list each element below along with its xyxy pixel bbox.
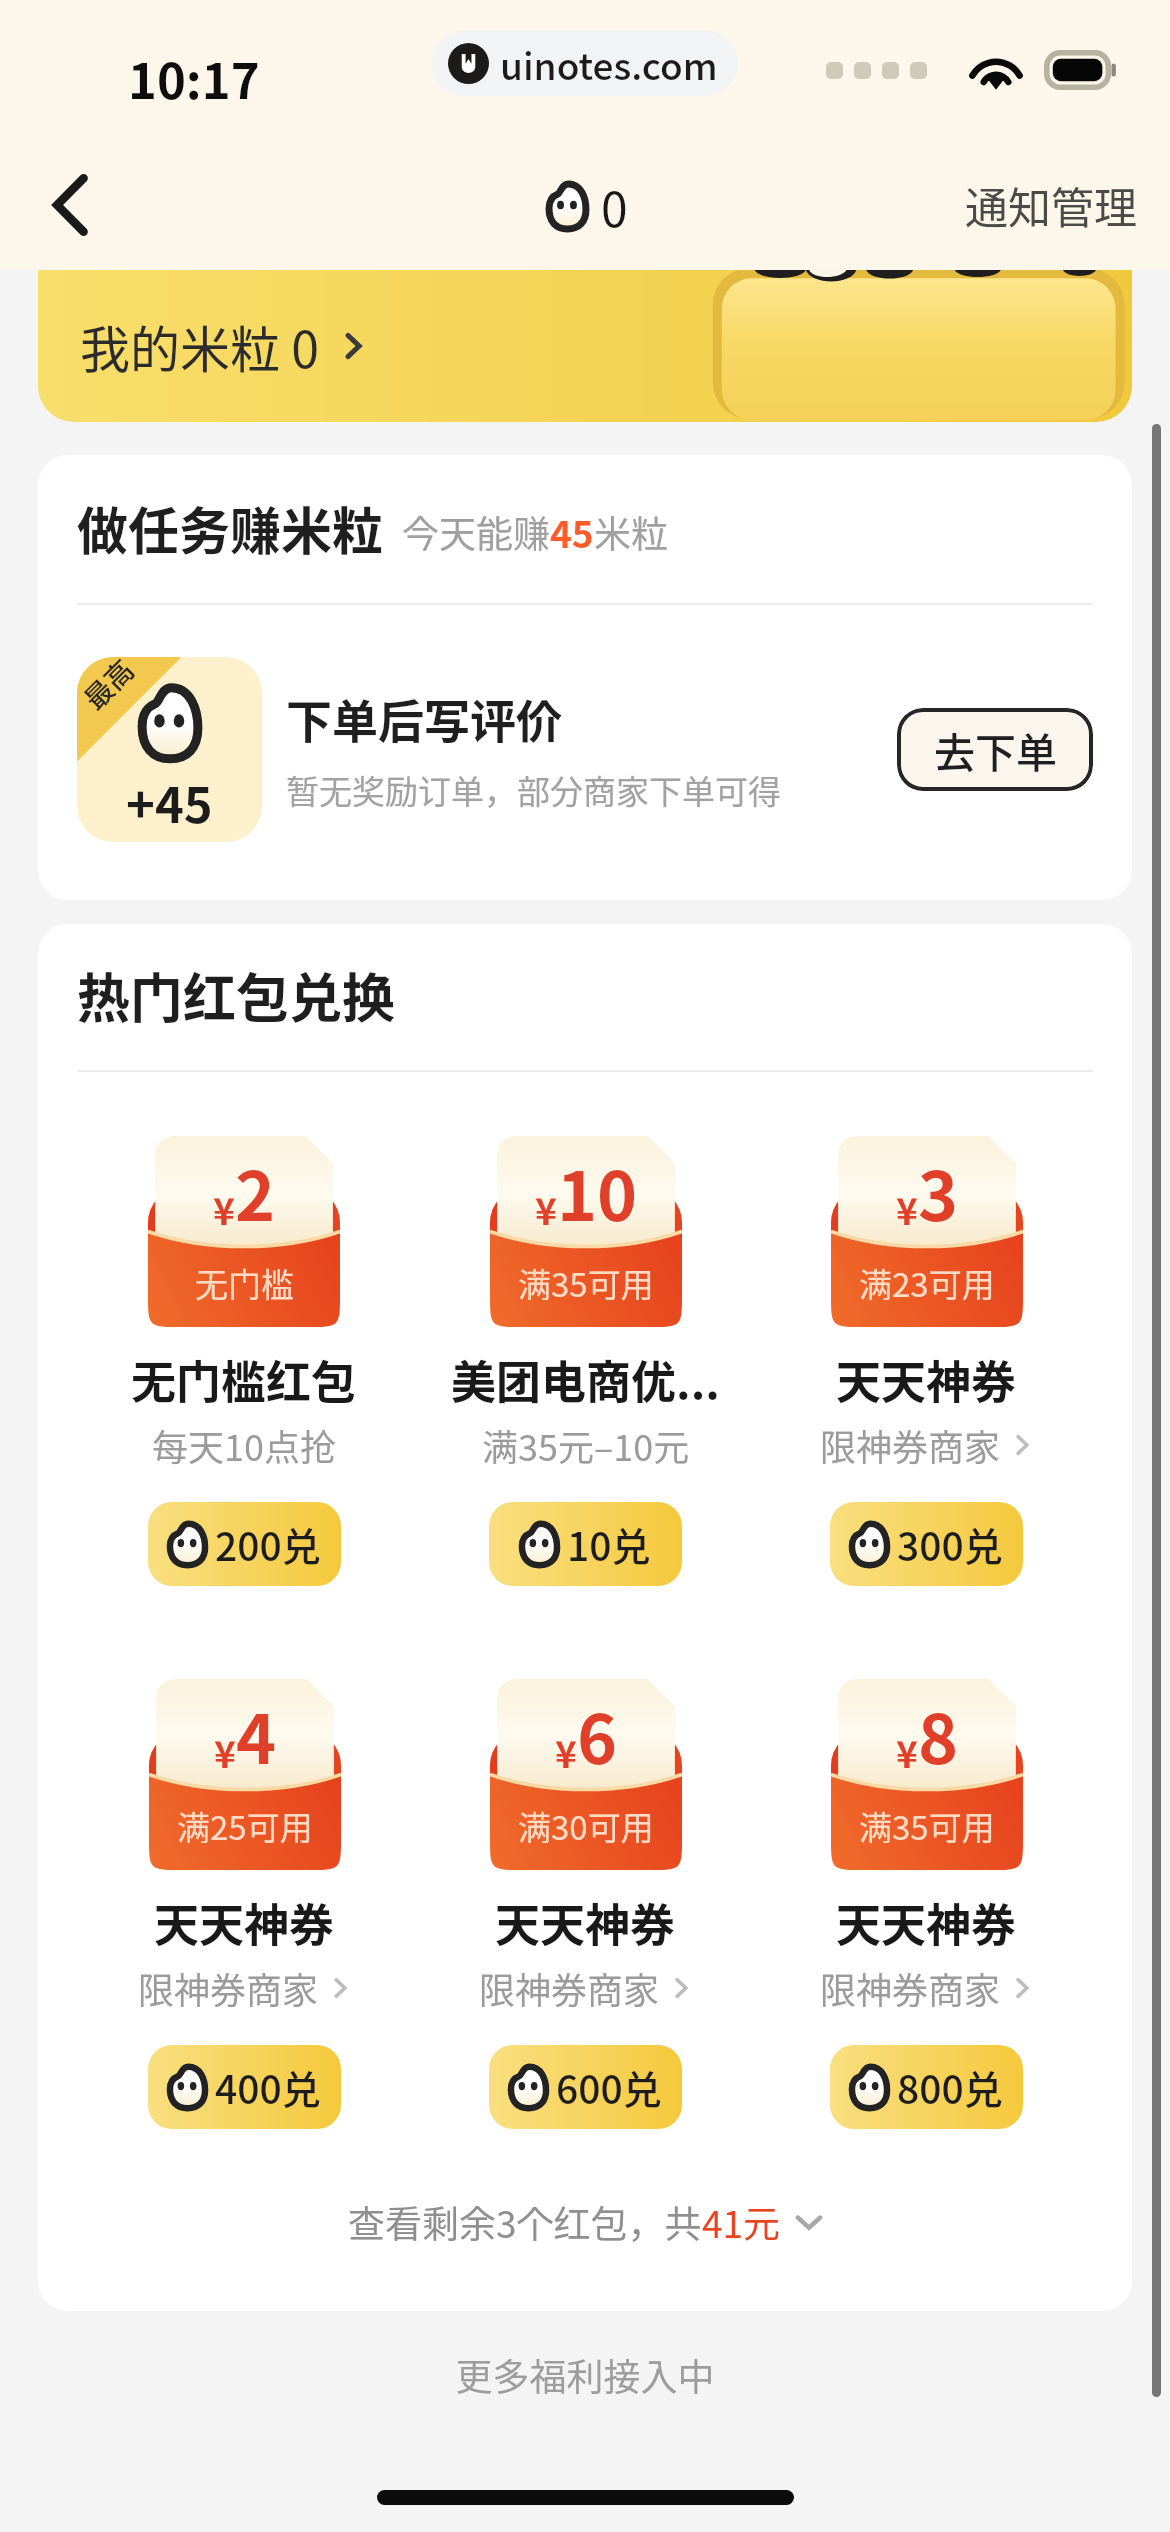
button[interactable]: 最高 (77, 657, 1093, 842)
staticText: +45 (126, 766, 213, 837)
staticText: 10:17 (128, 42, 260, 113)
button[interactable]: 去下单 (897, 708, 1093, 791)
button[interactable]: Back (0, 140, 140, 270)
staticText: 45 (550, 505, 594, 559)
staticText: 满25可用 (177, 1802, 313, 1850)
staticText: ¥ (896, 1725, 918, 1779)
button[interactable]: 通知管理 (949, 154, 1153, 256)
staticText: 美团电商优... (451, 1347, 720, 1412)
staticText: 300兑 (897, 1516, 1003, 1572)
staticText: 10 (557, 1142, 638, 1240)
staticText: 天天神券 (836, 1890, 1017, 1955)
staticText: uinotes.com (500, 37, 718, 91)
staticText: 每天10点抢 (152, 1419, 336, 1471)
staticText: 通知管理 (965, 174, 1137, 236)
button[interactable]: ¥ (451, 1136, 720, 1586)
staticText: 4 (236, 1685, 277, 1783)
staticText: 天天神券 (495, 1890, 676, 1955)
staticText: 更多福利接入中 (0, 2348, 1170, 2402)
staticText: 做任务赚米粒 (77, 491, 384, 565)
staticText: ¥ (214, 1725, 236, 1779)
staticText: 600兑 (556, 2059, 662, 2115)
staticText: 8 (918, 1685, 959, 1783)
staticText: 限神券商家 (479, 1962, 660, 2014)
staticText: 无门槛 (195, 1259, 294, 1307)
staticText: 满23可用 (859, 1259, 995, 1307)
button[interactable]: ¥ (138, 1679, 351, 2129)
staticText: 2 (235, 1142, 276, 1240)
staticText: 下单后写评价 (286, 685, 562, 752)
staticText: 最高 (77, 657, 143, 718)
staticText: ¥ (535, 1182, 557, 1236)
staticText: 米粒 (594, 505, 668, 559)
staticText: 我的米粒 0 (80, 310, 319, 382)
staticText: 无门槛红包 (131, 1347, 357, 1412)
staticText: 400兑 (215, 2059, 321, 2115)
staticText: 限神券商家 (138, 1962, 319, 2014)
button[interactable]: ¥ (479, 1679, 692, 2129)
staticText: 天天神券 (836, 1347, 1017, 1412)
staticText: 10兑 (567, 1516, 651, 1572)
staticText: 800兑 (897, 2059, 1003, 2115)
staticText: 限神券商家 (820, 1419, 1001, 1471)
staticText: 去下单 (934, 720, 1057, 779)
staticText: 6 (577, 1685, 618, 1783)
staticText: 查看剩余3个红包，共 (348, 2195, 702, 2249)
staticText: 满35可用 (518, 1259, 654, 1307)
staticText: ¥ (555, 1725, 577, 1779)
staticText: 今天能赚 (402, 505, 550, 559)
staticText: 0 (601, 171, 628, 241)
button[interactable]: 查看剩余3个红包，共 (38, 2169, 1132, 2275)
staticText: 3 (918, 1142, 959, 1240)
staticText: 暂无奖励订单，部分商家下单可得 (286, 766, 781, 814)
staticText: 200兑 (215, 1516, 321, 1572)
staticText: 热门红包兑换 (77, 957, 395, 1034)
button[interactable]: ¥ (820, 1679, 1033, 2129)
staticText: 满35可用 (859, 1802, 995, 1850)
button[interactable]: 我的米粒 0 (38, 270, 1132, 422)
button[interactable]: ¥ (131, 1136, 357, 1586)
staticText: 满30可用 (518, 1802, 654, 1850)
staticText: 满35元–10元 (482, 1419, 690, 1471)
staticText: 限神券商家 (820, 1962, 1001, 2014)
staticText: 天天神券 (154, 1890, 335, 1955)
staticText: 41元 (702, 2195, 781, 2249)
staticText: ¥ (896, 1182, 918, 1236)
staticText: ¥ (213, 1182, 235, 1236)
button[interactable]: ¥ (820, 1136, 1033, 1586)
